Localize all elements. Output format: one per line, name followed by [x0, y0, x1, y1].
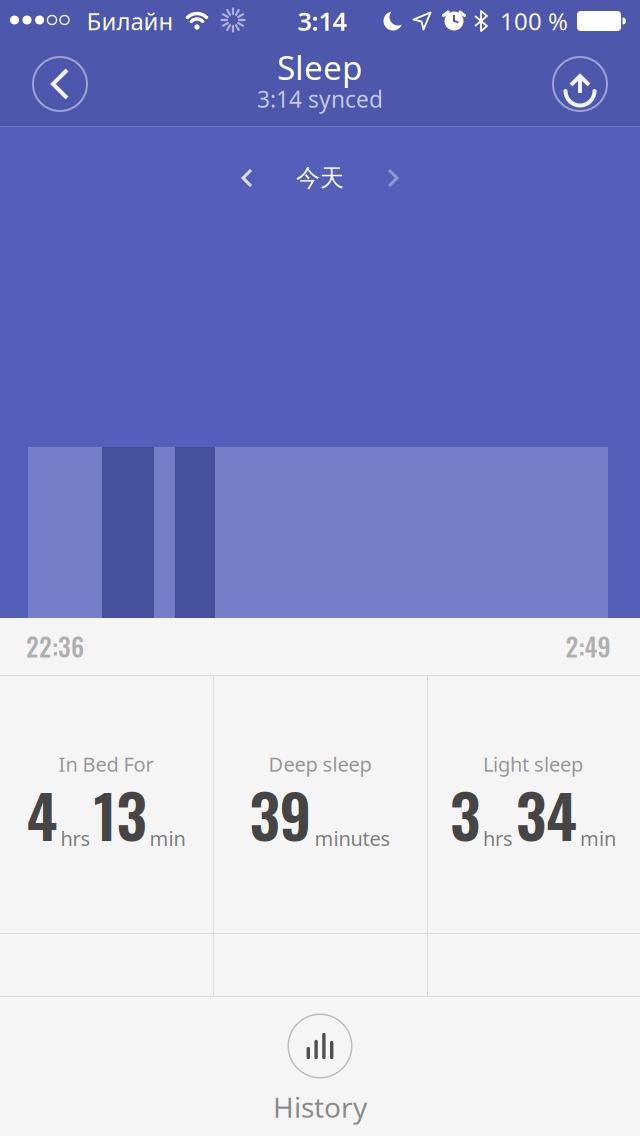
staticText: 3	[450, 769, 480, 858]
staticText: 3:14 synced	[257, 84, 383, 114]
staticText: hrs	[483, 825, 513, 851]
button[interactable]: History	[273, 1088, 367, 1126]
staticText: History	[273, 1088, 367, 1126]
button[interactable]: Back	[27, 51, 93, 117]
staticText: Билайн	[86, 5, 173, 37]
button[interactable]: Next day	[379, 168, 399, 188]
staticText: Deep sleep	[268, 751, 371, 777]
staticText: 4	[26, 769, 57, 858]
staticText: 3:14	[297, 4, 346, 38]
staticText: min	[580, 825, 616, 851]
staticText: Sleep	[277, 45, 363, 89]
staticText: 100 %	[500, 5, 568, 37]
button[interactable]: Share	[547, 51, 613, 117]
staticText: 2:49	[565, 627, 610, 665]
staticText: minutes	[314, 825, 390, 851]
staticText: hrs	[60, 825, 90, 851]
button[interactable]: Previous day	[241, 168, 261, 188]
staticText: 22:36	[26, 627, 84, 665]
staticText: 今天	[296, 163, 344, 193]
staticText: In Bed For	[58, 751, 153, 777]
staticText: Light sleep	[483, 751, 583, 777]
staticText: min	[149, 825, 185, 851]
staticText: 34	[516, 769, 577, 858]
staticText: 13	[93, 769, 146, 858]
button[interactable]: History	[287, 1013, 352, 1078]
staticText: 39	[249, 769, 311, 858]
